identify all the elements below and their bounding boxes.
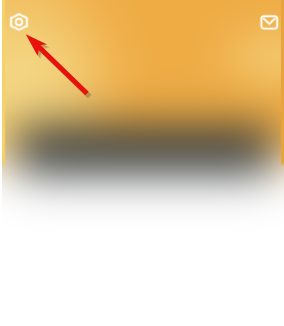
button[interactable]: Mail: [256, 10, 280, 34]
button[interactable]: Settings: [7, 10, 31, 34]
